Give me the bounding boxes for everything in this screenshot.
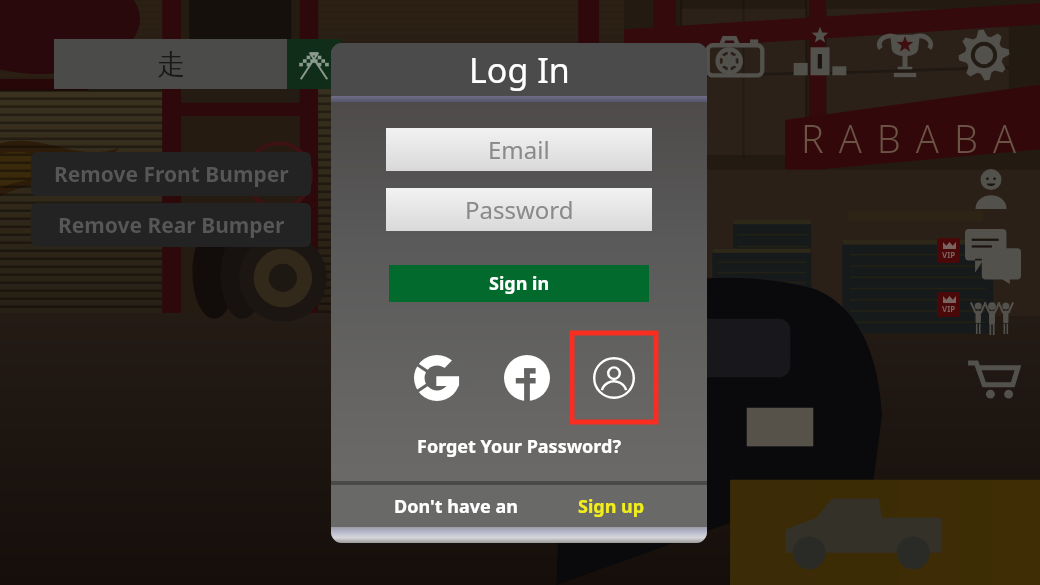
button[interactable]: Email [386,128,652,171]
staticText: Log In [469,47,570,93]
button[interactable]: Forget Your Password? [331,434,707,459]
staticText: RABABA [801,112,1032,164]
button[interactable]: Sign in as Guest [572,333,656,422]
staticText: 走 [157,47,185,82]
staticText: Password [465,193,574,226]
button[interactable]: Remove Front Bumper [31,152,311,196]
staticText: VIP [942,249,956,260]
staticText: Email [488,133,550,166]
button[interactable]: Shop [966,349,1020,403]
button[interactable]: Leaderboard [791,25,849,83]
button[interactable]: Sign in with Google [392,333,482,422]
button[interactable]: VIP [937,238,960,263]
button[interactable]: 走 [54,39,341,89]
button[interactable]: Don't have an [394,494,518,519]
staticText: VIP [942,303,956,314]
button[interactable]: Settings [957,28,1011,82]
staticText: Don't have an [394,494,518,519]
button[interactable]: Remove Rear Bumper [31,203,311,247]
button[interactable]: Camera [705,28,765,88]
staticText: Sign in [489,271,550,296]
staticText: Remove Rear Bumper [58,211,285,240]
staticText: Remove Front Bumper [54,160,289,189]
staticText: Sign up [578,494,645,519]
button[interactable]: Profile [969,166,1013,210]
button[interactable]: VIP [937,292,960,317]
button[interactable]: Trophies [876,26,934,84]
button[interactable]: Sign in with Facebook [482,333,572,422]
button[interactable]: Password [386,188,652,231]
staticText: Forget Your Password? [417,434,621,459]
button[interactable]: Chat [964,227,1022,285]
button[interactable]: Sign up [578,494,645,519]
button[interactable]: Friends [968,289,1016,337]
button[interactable]: Sign in [389,265,649,302]
